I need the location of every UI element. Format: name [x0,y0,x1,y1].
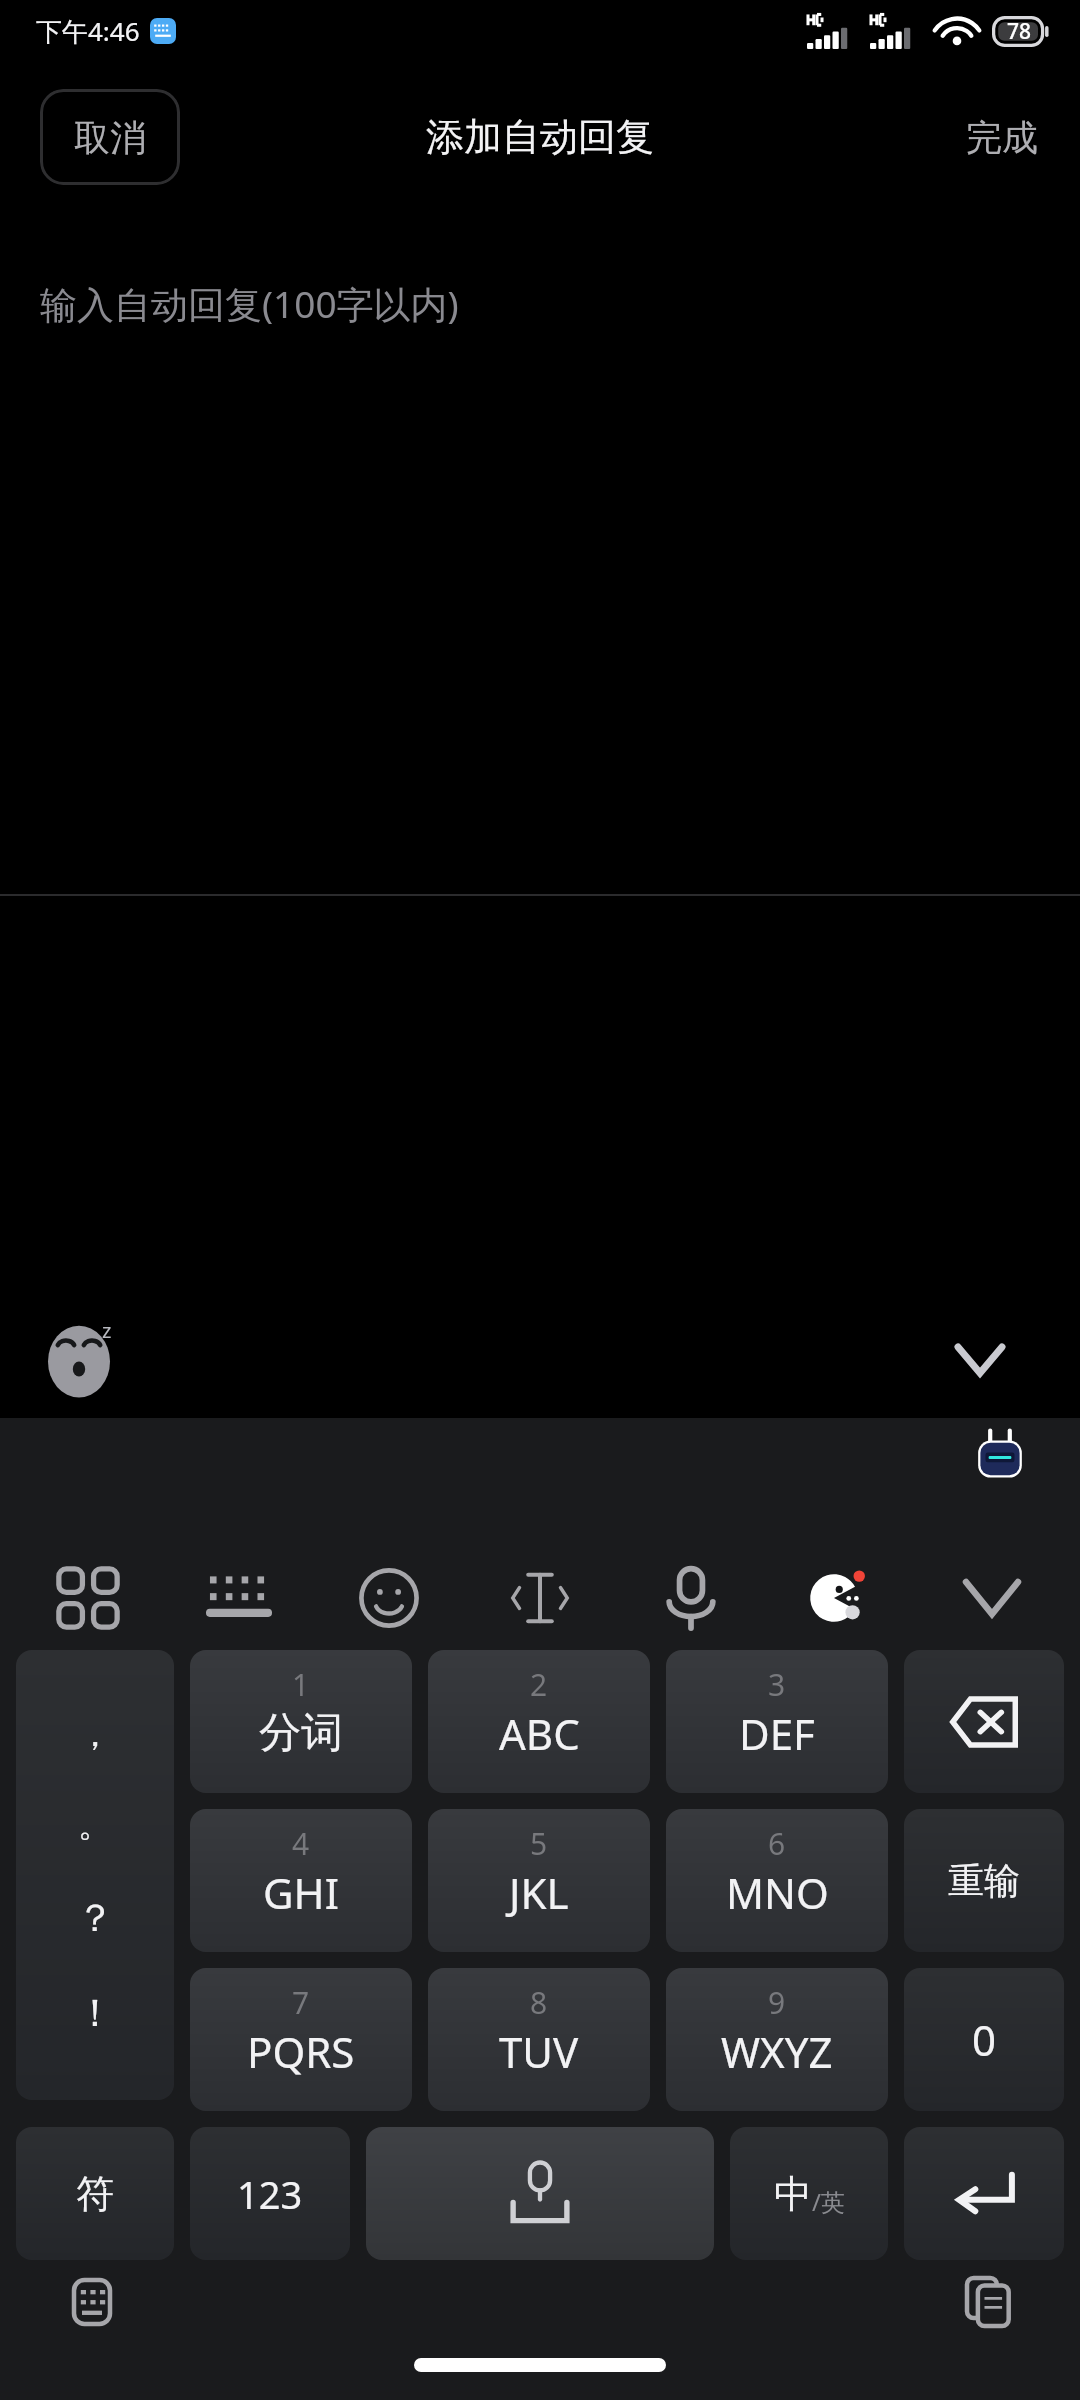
staticText: ABC [499,1705,580,1762]
staticText: 8 [530,1982,548,2023]
staticText: 添加自动回复 [426,113,654,161]
button[interactable]: 123 [190,2127,350,2260]
staticText: 6 [768,1823,786,1864]
button[interactable]: 0 [904,1968,1064,2111]
staticText: ？ [76,1894,114,1942]
staticText: DEF [739,1705,815,1762]
staticText: 分词 [259,1707,343,1760]
staticText: WXYZ [721,2023,833,2080]
staticText: PQRS [247,2023,355,2080]
button[interactable]: Assistant [968,1422,1032,1486]
button[interactable]: 重输 [904,1809,1064,1952]
button[interactable]: 取消 [40,89,180,185]
staticText: 0 [972,2011,997,2068]
button[interactable]: 4 [190,1809,412,1952]
staticText: 取消 [74,115,146,160]
staticText: 完成 [966,115,1038,160]
button[interactable]: ， [16,1650,174,2100]
staticText: 5 [530,1823,548,1864]
staticText: 重输 [948,1858,1020,1903]
button[interactable]: 6 [666,1809,888,1952]
button[interactable]: 1 [190,1650,412,1793]
staticText: 9 [768,1982,786,2023]
staticText: MNO [726,1864,829,1921]
button[interactable]: 8 [428,1968,650,2111]
button[interactable]: 符 [16,2127,174,2260]
button[interactable]: Mascot [793,1550,889,1646]
staticText: 7 [292,1982,310,2023]
staticText: 78 [1007,17,1032,46]
staticText: JKL [509,1864,569,1921]
button[interactable]: Keyboard layout [191,1550,287,1646]
button[interactable]: Collapse keyboard [944,1550,1040,1646]
staticText: 下午4:46 [36,13,140,49]
staticText: ！ [76,1989,114,2037]
button[interactable]: 3 [666,1650,888,1793]
button[interactable]: Emoji [341,1550,437,1646]
button[interactable]: 5 [428,1809,650,1952]
staticText: z [102,1317,112,1344]
staticText: 输入自动回复(100字以内) [40,278,459,329]
button[interactable]: Hide [950,1330,1010,1390]
button[interactable]: Backspace [904,1650,1064,1793]
button[interactable]: Voice input [643,1550,739,1646]
staticText: ， [78,1713,112,1756]
staticText: GHI [263,1864,339,1921]
button[interactable]: Text cursor [492,1550,588,1646]
staticText: 1 [292,1664,310,1705]
staticText: TUV [499,2023,579,2080]
button[interactable]: 9 [666,1968,888,2111]
staticText: 符 [76,2170,114,2218]
staticText: 中 [774,2170,812,2218]
button[interactable]: Space / voice [366,2127,714,2260]
button[interactable]: Sleepy emoji [48,1321,110,1399]
button[interactable]: Enter [904,2127,1064,2260]
staticText: 4 [292,1823,310,1864]
staticText: 。 [78,1803,112,1846]
button[interactable]: 2 [428,1650,650,1793]
staticText: 123 [237,2168,303,2220]
button[interactable]: 完成 [950,97,1054,178]
staticText: 2 [530,1664,548,1705]
button[interactable]: 中 [730,2127,888,2260]
button[interactable]: Clipboard [956,2270,1020,2334]
button[interactable]: Switch keyboard [60,2270,124,2334]
staticText: 3 [768,1664,786,1705]
button[interactable]: 7 [190,1968,412,2111]
button[interactable]: Apps [40,1550,136,1646]
staticText: /英 [812,2185,845,2218]
